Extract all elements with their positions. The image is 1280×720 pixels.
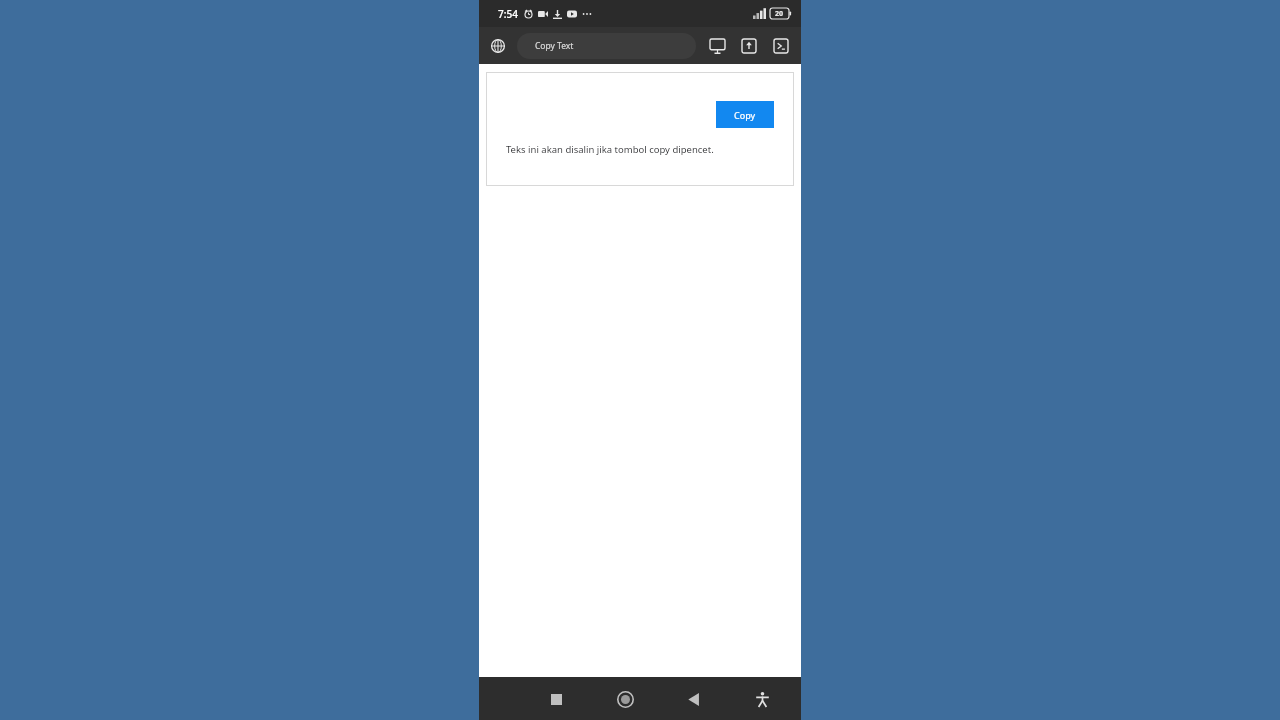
button[interactable]: Desktop site <box>705 34 729 58</box>
staticText: 7:54 <box>498 7 518 21</box>
button[interactable]: Copy <box>716 101 774 128</box>
button[interactable]: Copy Text <box>517 33 696 59</box>
button[interactable]: Back <box>676 682 710 716</box>
staticText: Copy Text <box>535 40 574 52</box>
staticText: Teks ini akan disalin jika tombol copy d… <box>506 143 714 156</box>
button[interactable]: Console <box>769 34 793 58</box>
staticText: 20 <box>775 9 784 19</box>
button[interactable]: Site information <box>485 33 511 59</box>
button[interactable]: Accessibility <box>745 682 779 716</box>
button[interactable]: Home <box>608 682 642 716</box>
staticText: Copy <box>734 109 756 121</box>
button[interactable]: Share <box>737 34 761 58</box>
button[interactable]: Recent apps <box>539 682 573 716</box>
